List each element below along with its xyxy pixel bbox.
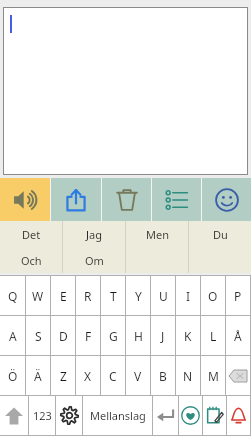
staticText: Mellanslag: [90, 408, 146, 423]
button[interactable]: Ö: [0, 356, 25, 395]
staticText: A: [9, 328, 17, 344]
staticText: V: [134, 368, 142, 384]
staticText: Om: [85, 253, 104, 268]
staticText: P: [234, 288, 242, 304]
staticText: Ä: [34, 368, 42, 384]
staticText: Ö: [8, 368, 18, 384]
staticText: H: [134, 328, 143, 344]
button[interactable]: R: [76, 276, 100, 315]
staticText: O: [208, 288, 218, 304]
button[interactable]: Shift: [0, 396, 28, 435]
staticText: N: [183, 368, 193, 384]
button[interactable]: Notes: [203, 396, 226, 435]
staticText: Q: [8, 288, 18, 304]
button[interactable]: E: [51, 276, 75, 315]
button[interactable]: Emoji: [202, 178, 251, 221]
button[interactable]: 123: [29, 396, 55, 435]
button[interactable]: K: [176, 316, 200, 355]
button[interactable]: Favorites: [179, 396, 202, 435]
button[interactable]: Om: [63, 247, 125, 273]
button[interactable]: Enter: [153, 396, 178, 435]
button[interactable]: D: [51, 316, 75, 355]
staticText: T: [110, 288, 117, 304]
button[interactable]: C: [101, 356, 125, 395]
button[interactable]: Q: [0, 276, 25, 315]
button[interactable]: Å: [226, 316, 250, 355]
button[interactable]: Y: [126, 276, 150, 315]
staticText: Det: [22, 227, 41, 242]
button[interactable]: J: [151, 316, 175, 355]
staticText: U: [159, 288, 168, 304]
button[interactable]: O: [201, 276, 225, 315]
button[interactable]: Men: [126, 221, 188, 247]
staticText: Jag: [86, 227, 102, 242]
staticText: Å: [234, 328, 242, 344]
button[interactable]: M: [201, 356, 225, 395]
staticText: E: [60, 288, 67, 304]
staticText: L: [210, 328, 217, 344]
button[interactable]: T: [101, 276, 125, 315]
staticText: Och: [21, 253, 42, 268]
staticText: 123: [33, 408, 52, 423]
button[interactable]: Ä: [26, 356, 50, 395]
button[interactable]: Mellanslag: [83, 396, 152, 435]
staticText: W: [32, 288, 44, 304]
staticText: D: [59, 328, 68, 344]
button[interactable]: G: [101, 316, 125, 355]
button[interactable]: Speak: [0, 178, 50, 221]
staticText: Z: [60, 368, 67, 384]
button[interactable]: Jag: [63, 221, 125, 247]
button[interactable]: U: [151, 276, 175, 315]
staticText: X: [84, 368, 92, 384]
staticText: Men: [146, 227, 169, 242]
button[interactable]: N: [176, 356, 200, 395]
staticText: J: [161, 328, 165, 344]
button[interactable]: H: [126, 316, 150, 355]
button[interactable]: Du: [189, 221, 251, 247]
staticText: Y: [135, 288, 142, 304]
button[interactable]: Settings: [56, 396, 82, 435]
button[interactable]: P: [226, 276, 250, 315]
staticText: C: [109, 368, 117, 384]
staticText: S: [35, 328, 42, 344]
staticText: I: [186, 288, 191, 304]
button[interactable]: X: [76, 356, 100, 395]
button[interactable]: F: [76, 316, 100, 355]
button[interactable]: B: [151, 356, 175, 395]
button[interactable]: Backspace: [226, 356, 250, 395]
button[interactable]: V: [126, 356, 150, 395]
button[interactable]: List: [152, 178, 201, 221]
button[interactable]: Alerts: [227, 396, 250, 435]
button[interactable]: A: [0, 316, 25, 355]
button[interactable]: S: [26, 316, 50, 355]
button[interactable]: I: [176, 276, 200, 315]
button[interactable]: [3, 7, 248, 175]
button[interactable]: W: [26, 276, 50, 315]
button[interactable]: Z: [51, 356, 75, 395]
staticText: G: [109, 328, 118, 344]
staticText: F: [85, 328, 92, 344]
staticText: B: [159, 368, 167, 384]
staticText: K: [184, 328, 192, 344]
button[interactable]: Share: [51, 178, 101, 221]
staticText: Du: [213, 227, 228, 242]
button[interactable]: Delete: [102, 178, 151, 221]
button[interactable]: Och: [0, 247, 62, 273]
staticText: M: [208, 368, 219, 384]
button[interactable]: L: [201, 316, 225, 355]
button[interactable]: Det: [0, 221, 62, 247]
staticText: R: [84, 288, 92, 304]
